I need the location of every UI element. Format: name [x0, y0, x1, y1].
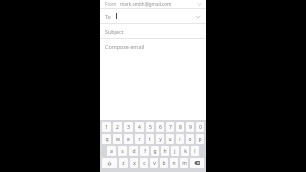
- staticText: From: [105, 1, 117, 7]
- button[interactable]: t: [146, 134, 154, 144]
- staticText: 5: [149, 124, 152, 131]
- button[interactable]: q: [102, 134, 111, 144]
- staticText: 8: [179, 124, 182, 131]
- button[interactable]: w: [113, 134, 122, 144]
- staticText: a: [110, 148, 113, 155]
- button[interactable]: i: [176, 134, 184, 144]
- button[interactable]: x: [130, 158, 138, 168]
- button[interactable]: r: [135, 134, 144, 144]
- button[interactable]: f: [140, 146, 149, 156]
- button[interactable]: 1: [102, 122, 111, 132]
- button[interactable]: z: [119, 158, 128, 168]
- button[interactable]: 9: [186, 122, 194, 132]
- staticText: 9: [189, 124, 192, 131]
- staticText: d: [132, 148, 136, 155]
- staticText: o: [188, 136, 192, 143]
- staticText: q: [105, 136, 109, 143]
- staticText: k: [184, 148, 187, 155]
- button[interactable]: From: [100, 0, 206, 8]
- staticText: p: [198, 136, 202, 143]
- staticText: l: [194, 148, 196, 155]
- button[interactable]: u: [166, 134, 174, 144]
- staticText: y: [159, 136, 162, 143]
- staticText: Subject: [105, 28, 124, 35]
- staticText: t: [149, 136, 151, 143]
- button[interactable]: k: [181, 146, 189, 156]
- button[interactable]: 0: [196, 122, 204, 132]
- staticText: e: [127, 136, 130, 143]
- staticText: 2: [116, 124, 119, 131]
- button[interactable]: 6: [156, 122, 164, 132]
- staticText: i: [179, 136, 181, 143]
- staticText: h: [163, 148, 167, 155]
- button[interactable]: To: [100, 9, 206, 23]
- staticText: Compose email: [105, 43, 145, 50]
- button[interactable]: 7: [166, 122, 174, 132]
- button[interactable]: g: [151, 146, 159, 156]
- staticText: j: [174, 148, 176, 155]
- button[interactable]: l: [191, 146, 199, 156]
- button[interactable]: p: [196, 134, 204, 144]
- button[interactable]: o: [186, 134, 194, 144]
- staticText: x: [133, 160, 136, 167]
- button[interactable]: d: [129, 146, 138, 156]
- staticText: s: [121, 148, 124, 155]
- staticText: v: [153, 160, 156, 167]
- staticText: f: [144, 148, 146, 155]
- staticText: b: [162, 160, 166, 167]
- button[interactable]: 5: [146, 122, 154, 132]
- button[interactable]: s: [118, 146, 127, 156]
- staticText: w: [116, 136, 120, 143]
- staticText: n: [172, 160, 176, 167]
- staticText: 1: [105, 124, 108, 131]
- staticText: m: [182, 160, 187, 167]
- staticText: mark.smith@gmail.com: [120, 1, 172, 7]
- button[interactable]: j: [171, 146, 179, 156]
- button[interactable]: y: [156, 134, 164, 144]
- button[interactable]: 4: [135, 122, 144, 132]
- button[interactable]: Backspace: [190, 158, 204, 168]
- button[interactable]: h: [161, 146, 169, 156]
- staticText: g: [153, 148, 157, 155]
- button[interactable]: Shift: [102, 158, 117, 168]
- staticText: To: [105, 13, 111, 20]
- button[interactable]: c: [140, 158, 148, 168]
- button[interactable]: m: [180, 158, 188, 168]
- staticText: 3: [127, 124, 130, 131]
- staticText: u: [168, 136, 172, 143]
- staticText: z: [122, 160, 125, 167]
- staticText: 6: [159, 124, 162, 131]
- button[interactable]: Compose email: [100, 39, 206, 120]
- button[interactable]: v: [150, 158, 158, 168]
- button[interactable]: b: [160, 158, 168, 168]
- button[interactable]: n: [170, 158, 178, 168]
- button[interactable]: 3: [124, 122, 133, 132]
- button[interactable]: 8: [176, 122, 184, 132]
- staticText: 7: [169, 124, 172, 131]
- button[interactable]: Show Cc and Bcc: [193, 12, 202, 21]
- button[interactable]: a: [107, 146, 116, 156]
- staticText: c: [143, 160, 146, 167]
- staticText: 4: [138, 124, 141, 131]
- staticText: r: [138, 136, 141, 143]
- staticText: 0: [199, 124, 202, 131]
- button[interactable]: Subject: [100, 24, 206, 38]
- button[interactable]: 2: [113, 122, 122, 132]
- button[interactable]: e: [124, 134, 133, 144]
